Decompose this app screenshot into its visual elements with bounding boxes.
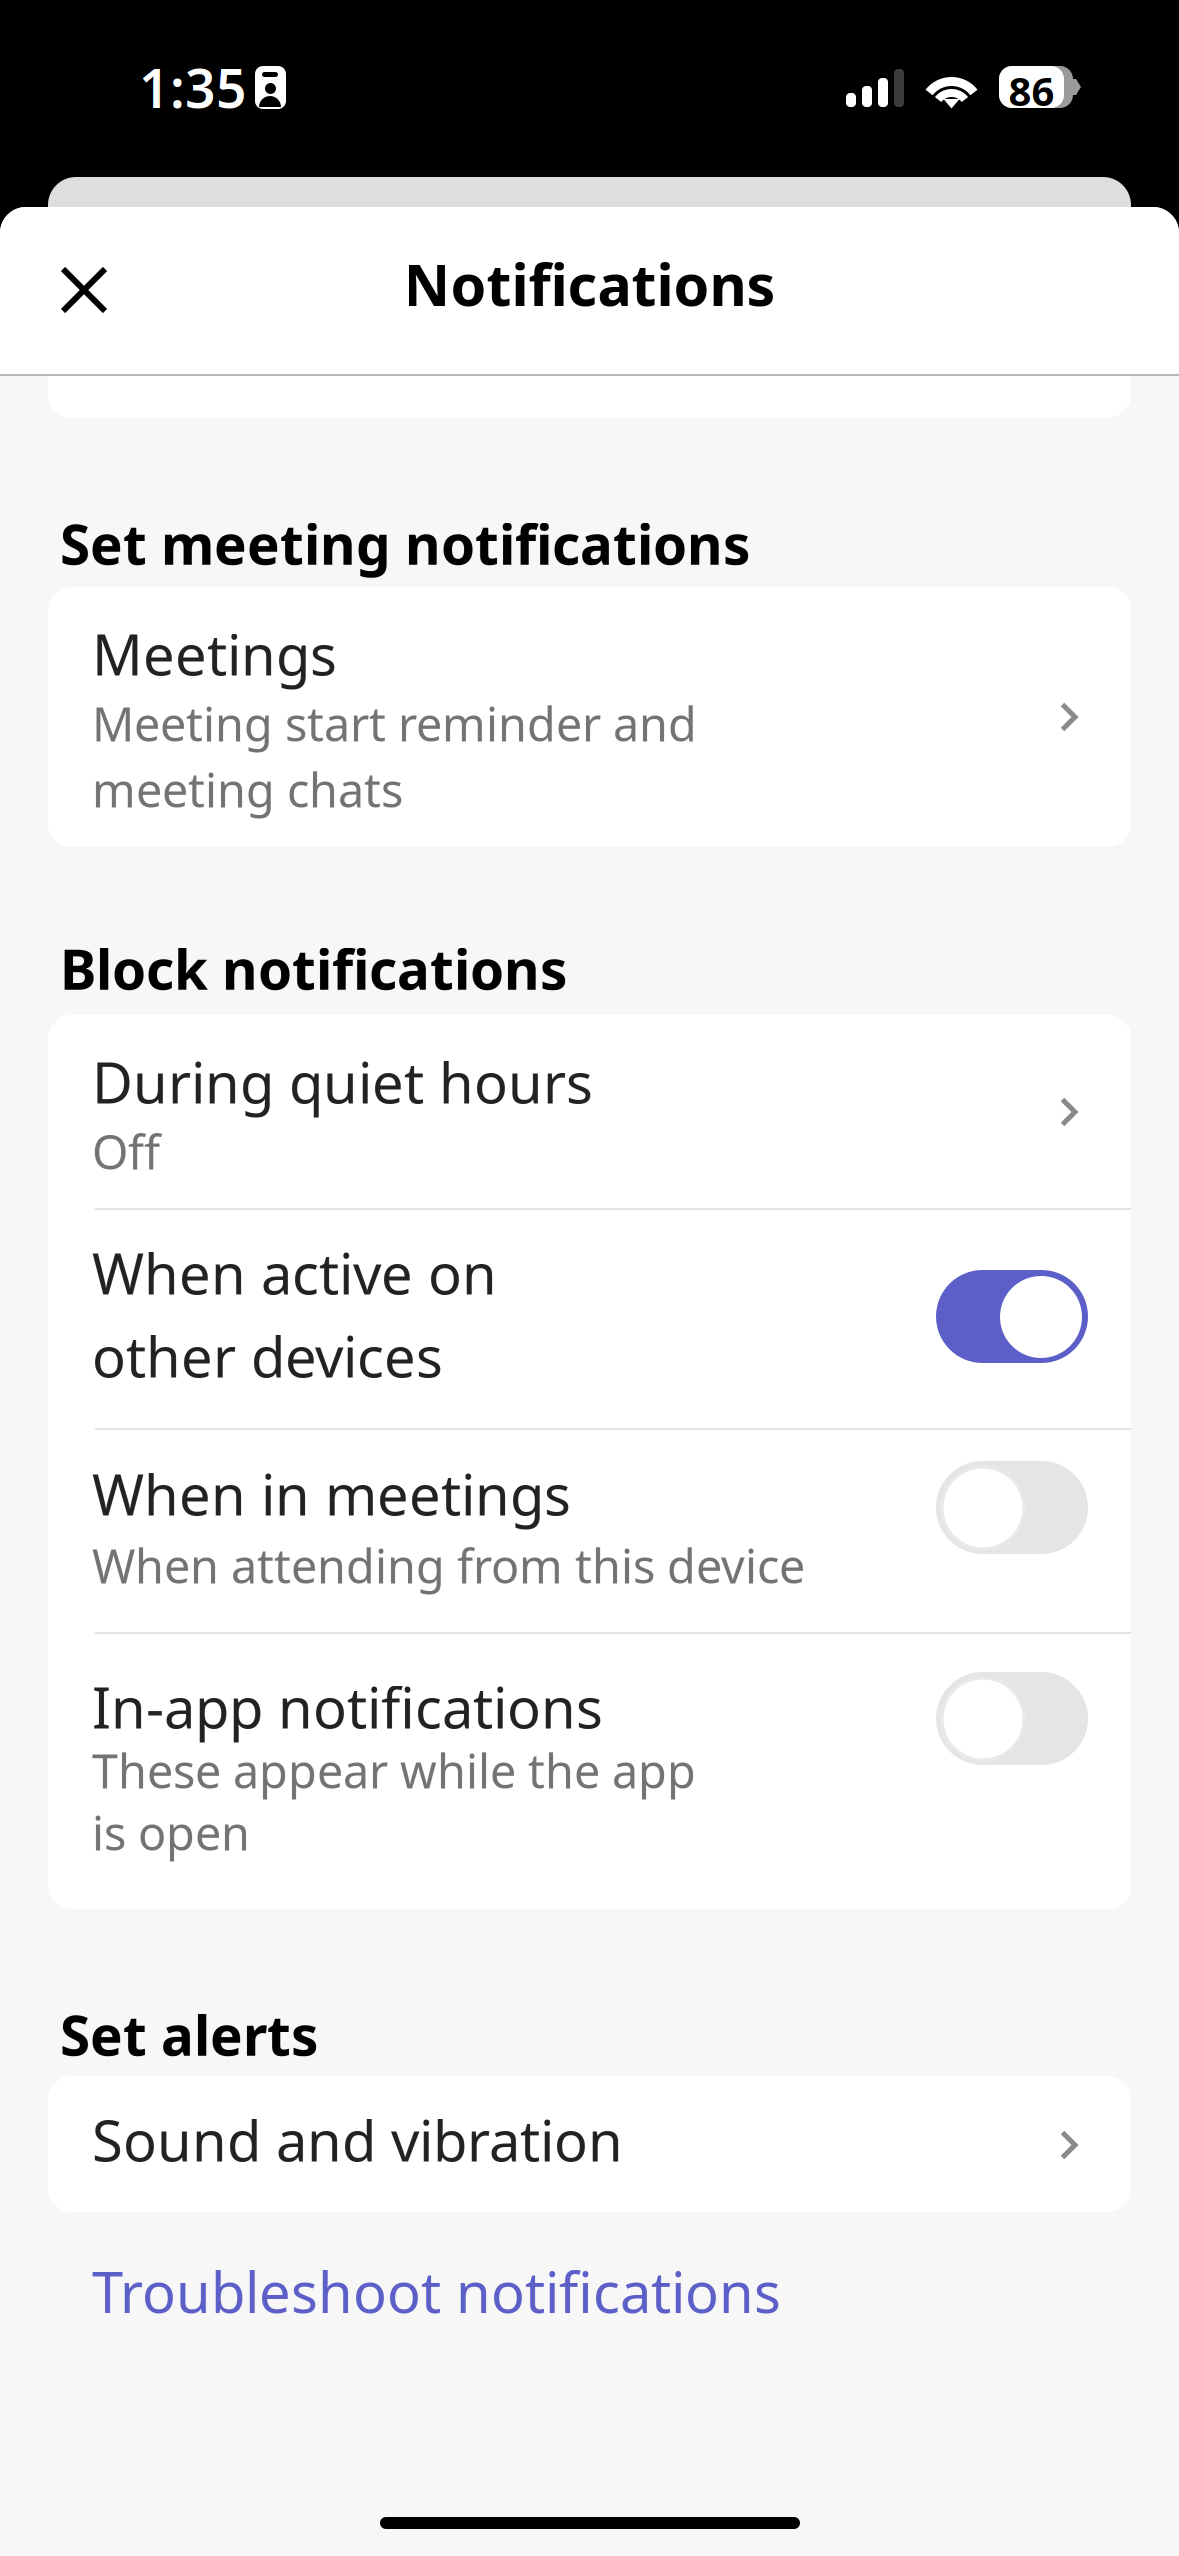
button[interactable]: Meetings <box>48 587 1131 847</box>
button[interactable]: Troubleshoot notifications <box>48 2233 1131 2353</box>
staticText: other devices <box>92 1319 443 1393</box>
staticText: meeting chats <box>92 758 403 820</box>
staticText: Set meeting notifications <box>60 507 750 580</box>
staticText: Set alerts <box>60 1998 318 2071</box>
staticText: These appear while the app <box>92 1739 696 1801</box>
staticText: Meeting start reminder and <box>92 692 697 754</box>
button[interactable]: In-app notifications <box>48 1634 1131 1909</box>
staticText: When in meetings <box>92 1457 571 1531</box>
staticText: 86 <box>1008 64 1054 117</box>
staticText: Meetings <box>92 617 337 691</box>
button[interactable]: When in meetings <box>48 1430 1131 1632</box>
staticText: 1:35 <box>139 52 247 123</box>
staticText: Block notifications <box>60 932 567 1005</box>
staticText: is open <box>92 1801 250 1863</box>
button[interactable]: Close <box>24 232 144 352</box>
button[interactable]: During quiet hours <box>48 1015 1131 1208</box>
staticText: Notifications <box>403 246 775 322</box>
staticText: Troubleshoot notifications <box>92 2254 781 2329</box>
button[interactable]: Sound and vibration <box>48 2076 1131 2212</box>
staticText: Off <box>92 1120 160 1182</box>
button[interactable]: When active on <box>48 1210 1131 1428</box>
staticText: In-app notifications <box>92 1670 603 1744</box>
staticText: Sound and vibration <box>92 2103 623 2177</box>
staticText: During quiet hours <box>92 1045 593 1119</box>
staticText: When active on <box>92 1236 497 1310</box>
staticText: When attending from this device <box>92 1534 805 1596</box>
